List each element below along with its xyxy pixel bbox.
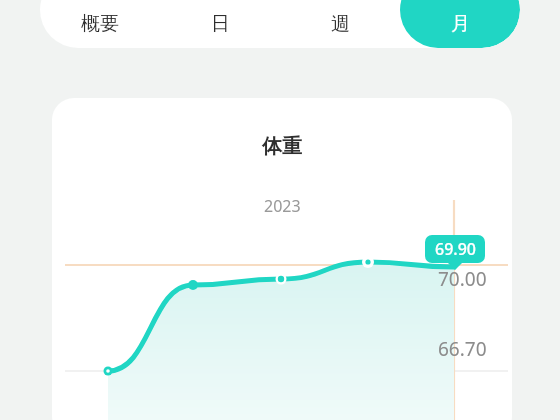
staticText: 66.70: [438, 336, 487, 362]
staticText: 週: [331, 12, 350, 36]
button[interactable]: 日: [160, 0, 280, 48]
staticText: 概要: [81, 12, 119, 36]
staticText: 体重: [262, 134, 302, 159]
button[interactable]: 週: [280, 0, 400, 48]
staticText: 日: [211, 12, 230, 36]
staticText: 70.00: [438, 266, 487, 292]
staticText: 2023: [264, 195, 301, 217]
button[interactable]: 月: [400, 0, 520, 48]
button[interactable]: 概要: [40, 0, 160, 48]
staticText: 69.90: [435, 238, 476, 260]
button[interactable]: 体重: [52, 98, 512, 420]
staticText: 月: [451, 12, 470, 36]
